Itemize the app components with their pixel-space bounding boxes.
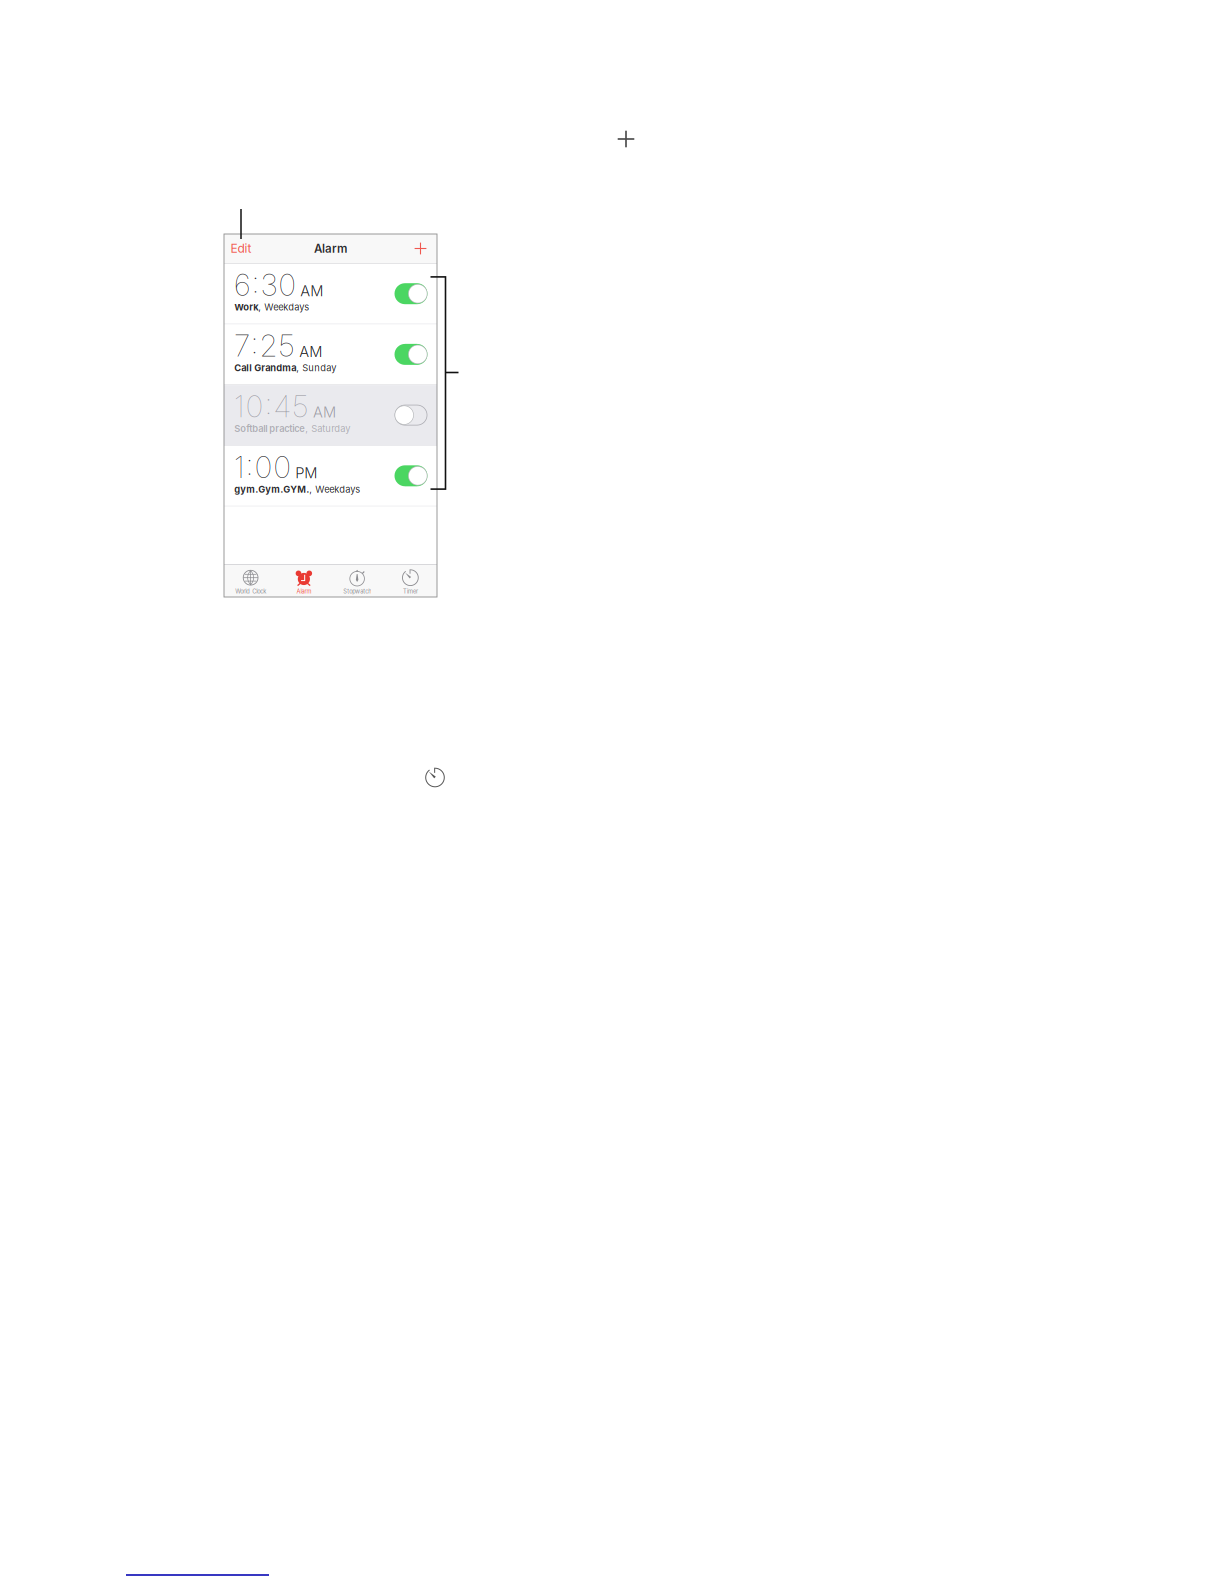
staticText: , Weekdays [309,484,360,495]
staticText: Timer [403,588,418,595]
staticText: World Clock [235,588,266,595]
staticText: , Saturday [305,423,350,434]
button[interactable]: Alarm [277,565,330,597]
button[interactable]: Edit [224,234,251,263]
staticText: 7:25 [234,328,295,364]
staticText: Stopwatch [343,588,371,595]
staticText: 10:45 [234,389,308,424]
button[interactable]: 1:00 [224,446,437,506]
staticText: AM [300,282,323,300]
button[interactable]: 7:25 [224,324,437,384]
staticText: Edit [230,241,251,256]
button[interactable]: World Clock [224,565,277,597]
staticText: , Sunday [296,362,336,374]
staticText: AM [313,403,336,421]
staticText: PM [295,464,317,482]
staticText: , Weekdays [258,302,309,313]
button[interactable]: 6:30 [224,264,437,324]
staticText: gym.Gym.GYM. [234,484,309,495]
staticText: 6:30 [234,267,296,303]
button[interactable]: Stopwatch [330,565,384,597]
staticText: AM [299,343,322,360]
staticText: Softball practice [234,423,305,434]
staticText: Work [234,302,258,313]
button[interactable]: 10:45 [224,385,437,445]
staticText: Alarm [314,241,347,255]
staticText: 1:00 [234,450,291,485]
button[interactable]: Add alarm [414,234,437,263]
button[interactable]: Timer [384,565,437,597]
staticText: Alarm [296,588,311,595]
staticText: Call Grandma [234,362,296,374]
